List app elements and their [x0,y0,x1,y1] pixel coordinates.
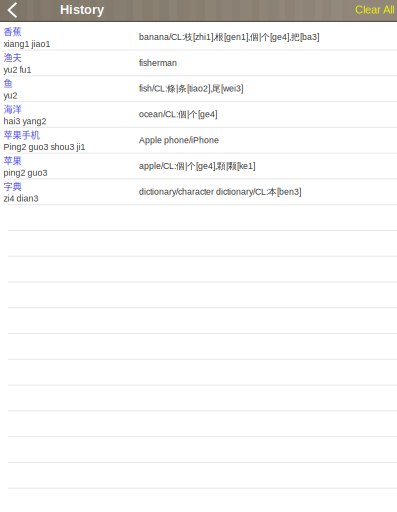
staticText: yu2 fu1 [3,65,31,75]
staticText: zi4 dian3 [3,194,38,203]
staticText: fish/CL:條|条[tiao2],尾[wei3] [139,83,243,94]
staticText: Ping2 guo3 shou3 ji1 [3,142,85,152]
staticText: 苹果 [3,154,21,167]
staticText: hai3 yang2 [3,116,46,126]
button[interactable]: 字典 [0,179,397,205]
staticText: 渔夫 [3,51,21,64]
staticText: Clear All [355,4,394,16]
staticText: fisherman [139,58,177,68]
button[interactable]: Clear All [355,4,397,16]
staticText: xiang1 jiao1 [3,39,50,49]
button[interactable]: Back [0,0,26,22]
staticText: 海洋 [3,102,21,115]
staticText: yu2 [3,91,17,100]
staticText: banana/CL:枝[zhi1],根[gen1],個|个[ge4],把[ba3… [139,32,319,43]
staticText: ocean/CL:個|个[ge4] [139,109,217,120]
button[interactable]: 鱼 [0,76,397,102]
staticText: Apple phone/iPhone [139,135,219,145]
button[interactable]: 苹果手机 [0,128,397,154]
button[interactable]: 香蕉 [0,25,397,51]
staticText: ping2 guo3 [3,168,47,178]
staticText: History [60,2,104,17]
staticText: 鱼 [3,76,12,89]
staticText: 字典 [3,179,21,192]
staticText: dictionary/character dictionary/CL:本[ben… [139,186,301,197]
staticText: apple/CL:個|个[ge4],顆|颗[ke1] [139,161,255,171]
button[interactable]: 海洋 [0,102,397,128]
button[interactable]: 苹果 [0,154,397,179]
staticText: 香蕉 [3,25,21,38]
button[interactable]: 渔夫 [0,51,397,76]
staticText: 苹果手机 [3,128,39,141]
